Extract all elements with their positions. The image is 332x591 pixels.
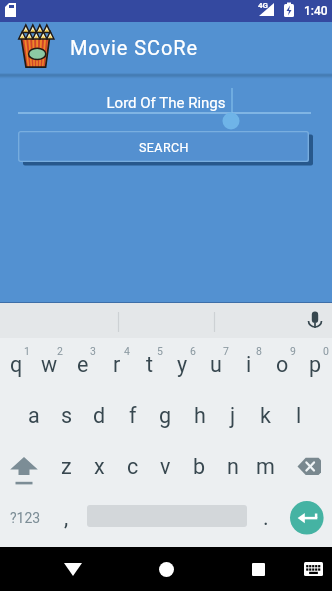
button[interactable]: Back — [53, 547, 93, 591]
staticText: w — [41, 352, 58, 377]
button[interactable]: Space — [83, 492, 249, 543]
staticText: , — [64, 505, 69, 530]
staticText: ?123 — [10, 510, 41, 526]
button[interactable]: m — [249, 441, 282, 492]
button[interactable]: d — [83, 390, 116, 441]
button[interactable]: Recents — [238, 547, 278, 591]
staticText: k — [260, 403, 271, 428]
button[interactable]: Voice input — [298, 303, 332, 338]
staticText: y — [177, 352, 188, 377]
staticText: z — [61, 454, 72, 479]
button[interactable]: i — [232, 339, 265, 390]
staticText: SEARCH — [139, 140, 189, 155]
button[interactable]: Shift — [0, 441, 50, 492]
staticText: d — [93, 403, 106, 428]
staticText: f — [129, 403, 137, 428]
staticText: q — [10, 352, 23, 377]
button[interactable]: z — [50, 441, 83, 492]
button[interactable]: p — [299, 339, 332, 390]
button[interactable]: Backspace — [282, 441, 332, 492]
staticText: x — [94, 454, 105, 479]
staticText: 7 — [223, 345, 229, 357]
button[interactable]: ?123 — [0, 492, 50, 543]
staticText: c — [127, 454, 139, 479]
button[interactable]: t — [133, 339, 166, 390]
staticText: 9 — [290, 345, 296, 357]
button[interactable]: k — [249, 390, 282, 441]
button[interactable]: u — [199, 339, 232, 390]
staticText: Lord Of The Rings — [0, 94, 332, 112]
staticText: r — [113, 352, 121, 377]
staticText: 3 — [90, 345, 96, 357]
button[interactable]: w — [33, 339, 66, 390]
staticText: 6 — [190, 345, 196, 357]
staticText: g — [159, 403, 172, 428]
button[interactable]: l — [282, 390, 315, 441]
button[interactable]: f — [116, 390, 149, 441]
button[interactable]: h — [183, 390, 216, 441]
button[interactable]: x — [83, 441, 116, 492]
staticText: j — [230, 403, 236, 428]
button[interactable]: r — [100, 339, 133, 390]
button[interactable]: Enter — [282, 492, 332, 543]
button[interactable]: j — [216, 390, 249, 441]
staticText: o — [276, 352, 289, 377]
staticText: 0 — [323, 345, 329, 357]
staticText: . — [263, 505, 269, 530]
staticText: a — [28, 403, 40, 428]
staticText: 1 — [24, 345, 30, 357]
staticText: l — [296, 403, 302, 428]
staticText: 4 — [124, 345, 130, 357]
staticText: 2 — [57, 345, 63, 357]
staticText: v — [160, 454, 171, 479]
button[interactable]: o — [266, 339, 299, 390]
button[interactable]: Switch keyboard — [295, 547, 331, 591]
button[interactable]: . — [249, 492, 282, 543]
staticText: h — [194, 403, 206, 428]
staticText: 8 — [256, 345, 262, 357]
staticText: p — [309, 352, 322, 377]
staticText: 1:40 — [304, 4, 328, 18]
staticText: 4G — [258, 1, 269, 10]
staticText: s — [61, 403, 73, 428]
staticText: u — [210, 352, 222, 377]
button[interactable]: y — [166, 339, 199, 390]
staticText: t — [146, 352, 154, 377]
button[interactable]: Home — [146, 547, 186, 591]
button[interactable]: v — [149, 441, 182, 492]
button[interactable]: q — [0, 339, 33, 390]
button[interactable]: g — [149, 390, 182, 441]
button[interactable]: s — [50, 390, 83, 441]
staticText: b — [193, 454, 206, 479]
staticText: Movie SCoRe — [70, 36, 198, 59]
button[interactable]: b — [183, 441, 216, 492]
staticText: n — [227, 454, 239, 479]
button[interactable]: e — [66, 339, 99, 390]
button[interactable]: SEARCH — [18, 131, 311, 165]
button[interactable]: , — [50, 492, 83, 543]
staticText: 5 — [157, 345, 163, 357]
button[interactable]: n — [216, 441, 249, 492]
staticText: e — [77, 352, 89, 377]
button[interactable]: a — [17, 390, 50, 441]
staticText: m — [256, 454, 275, 479]
staticText: i — [246, 352, 252, 377]
button[interactable]: c — [116, 441, 149, 492]
